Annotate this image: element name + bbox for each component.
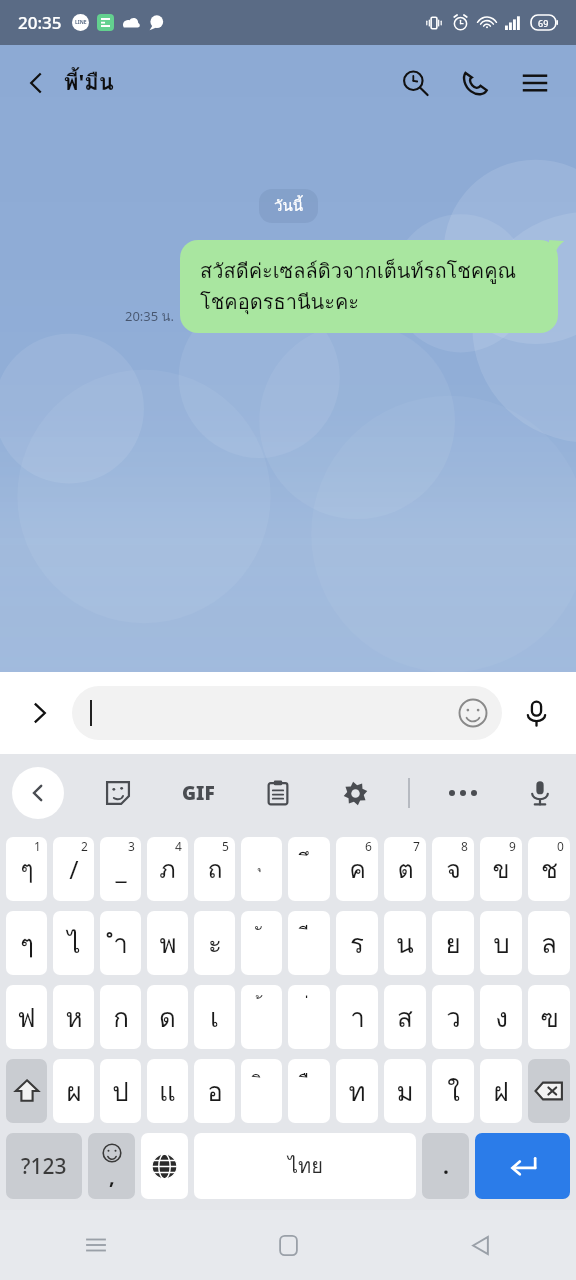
staticText: ย <box>445 923 461 964</box>
button[interactable]: 5 <box>194 837 235 901</box>
button[interactable]: Menu <box>512 60 558 106</box>
button[interactable]: า <box>336 985 378 1049</box>
button[interactable]: Expand <box>16 689 64 737</box>
staticText: / <box>69 852 79 886</box>
button[interactable]: ำ <box>100 911 141 975</box>
button[interactable]: ฟ <box>6 985 47 1049</box>
button[interactable]: Shift <box>6 1059 47 1123</box>
staticText: แ <box>159 1071 176 1112</box>
button[interactable] <box>72 686 502 740</box>
button[interactable]: ิ <box>241 1059 282 1123</box>
staticText: GIF <box>182 780 215 806</box>
staticText: ห <box>65 997 83 1038</box>
button[interactable]: ล <box>528 911 570 975</box>
button[interactable]: 8 <box>432 837 474 901</box>
staticText: น <box>396 923 414 964</box>
button[interactable]: ว <box>432 985 474 1049</box>
button[interactable]: ด <box>147 985 188 1049</box>
button[interactable]: Back <box>14 61 58 105</box>
button[interactable]: บ <box>480 911 522 975</box>
button[interactable]: Stickers <box>94 769 142 817</box>
button[interactable]: Settings <box>331 769 379 817</box>
button[interactable]: 0 <box>528 837 570 901</box>
staticText: อ <box>207 1071 223 1112</box>
button[interactable]: ?123 <box>6 1133 82 1199</box>
button[interactable]: ส <box>384 985 426 1049</box>
staticText: 0 <box>557 838 564 854</box>
button[interactable]: ก <box>100 985 141 1049</box>
button[interactable]: พ <box>147 911 188 975</box>
button[interactable]: Home <box>192 1210 384 1280</box>
button[interactable]: ั <box>241 911 282 975</box>
button[interactable]: ้ <box>241 985 282 1049</box>
button[interactable]: 1 <box>6 837 47 901</box>
button[interactable]: ่ <box>288 985 330 1049</box>
button[interactable]: Back <box>384 1210 576 1280</box>
button[interactable]: น <box>384 911 426 975</box>
staticText: ง <box>495 997 508 1038</box>
staticText: ำ <box>113 923 128 964</box>
staticText: ฃ <box>540 997 559 1038</box>
button[interactable]: ึ <box>288 837 330 901</box>
button[interactable]: Emoji and comma <box>88 1133 135 1199</box>
button[interactable]: 6 <box>336 837 378 901</box>
button[interactable]: More options <box>439 769 487 817</box>
staticText: 6 <box>365 838 372 854</box>
button[interactable]: เ <box>194 985 235 1049</box>
button[interactable]: Change language <box>141 1133 188 1199</box>
staticText: LINE <box>75 19 87 26</box>
staticText: ข <box>492 849 510 889</box>
button[interactable]: ี <box>288 911 330 975</box>
staticText: า <box>350 997 365 1038</box>
button[interactable]: แ <box>147 1059 188 1123</box>
staticText: 20:35 <box>18 11 62 34</box>
button[interactable]: ื <box>288 1059 330 1123</box>
button[interactable]: สวัสดีค่ะเซลล์ดิวจากเต็นท์รถโชคคูณโชคอุด… <box>180 240 558 333</box>
button[interactable]: Voice input <box>516 769 564 817</box>
button[interactable]: . <box>422 1133 469 1199</box>
button[interactable]: 2 <box>53 837 94 901</box>
button[interactable]: Call <box>452 60 498 106</box>
button[interactable]: ๆ <box>6 911 47 975</box>
staticText: จ <box>446 849 461 889</box>
button[interactable]: GIF <box>172 767 224 819</box>
button[interactable]: Enter <box>475 1133 570 1199</box>
staticText: ป <box>112 1071 129 1112</box>
staticText: ส <box>397 997 413 1038</box>
button[interactable]: ุ <box>241 837 282 901</box>
button[interactable]: ม <box>384 1059 426 1123</box>
staticText: เ <box>210 997 219 1038</box>
button[interactable]: Clipboard <box>254 769 302 817</box>
button[interactable]: ใ <box>432 1059 474 1123</box>
button[interactable]: Backspace <box>528 1059 570 1123</box>
button[interactable]: ฝ <box>480 1059 522 1123</box>
button[interactable]: Voice message <box>512 689 560 737</box>
button[interactable]: ท <box>336 1059 378 1123</box>
button[interactable]: Search <box>392 60 438 106</box>
button[interactable]: 7 <box>384 837 426 901</box>
button[interactable]: ฃ <box>528 985 570 1049</box>
staticText: 20:35 น. <box>125 306 174 327</box>
button[interactable]: 9 <box>480 837 522 901</box>
button[interactable]: ย <box>432 911 474 975</box>
button[interactable]: ร <box>336 911 378 975</box>
button[interactable]: ป <box>100 1059 141 1123</box>
staticText: ะ <box>208 923 222 964</box>
button[interactable]: ผ <box>53 1059 94 1123</box>
staticText: 3 <box>128 838 135 854</box>
staticText: 8 <box>461 838 468 854</box>
staticText: 2 <box>81 838 88 854</box>
staticText: พ <box>159 923 177 964</box>
button[interactable]: Recents <box>0 1210 192 1280</box>
button[interactable]: อ <box>194 1059 235 1123</box>
button[interactable]: ห <box>53 985 94 1049</box>
staticText: ก <box>113 997 129 1038</box>
button[interactable]: Collapse toolbar <box>12 767 64 819</box>
button[interactable]: ไทย <box>194 1133 416 1199</box>
staticText: ด <box>159 997 176 1038</box>
button[interactable]: ะ <box>194 911 235 975</box>
button[interactable]: 4 <box>147 837 188 901</box>
button[interactable]: ง <box>480 985 522 1049</box>
button[interactable]: ไ <box>53 911 94 975</box>
button[interactable]: 3 <box>100 837 141 901</box>
